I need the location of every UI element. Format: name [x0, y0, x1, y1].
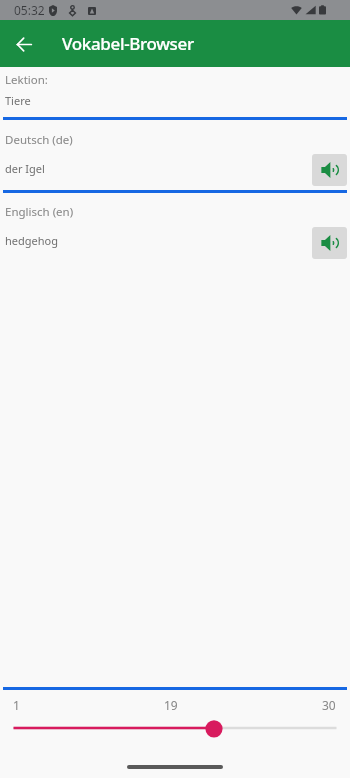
staticText: Lektion:: [5, 72, 48, 88]
staticText: Deutsch (de): [5, 132, 73, 148]
staticText: 05:32: [14, 2, 45, 18]
button[interactable]: Lektion:: [0, 68, 350, 120]
button[interactable]: Deutsch (de): [0, 122, 350, 190]
staticText: der Igel: [5, 161, 45, 176]
button[interactable]: Speak English word: [312, 227, 347, 259]
staticText: 19: [164, 697, 178, 713]
staticText: Englisch (en): [5, 204, 74, 220]
staticText: Vokabel-Browser: [62, 32, 194, 55]
staticText: 1: [13, 697, 20, 713]
staticText: 30: [322, 697, 336, 713]
button[interactable]: Back: [6, 26, 42, 62]
staticText: hedgehog: [5, 233, 58, 248]
button[interactable]: Speak German word: [312, 154, 347, 186]
button[interactable]: Vocabulary index slider, 19 of 30: [0, 717, 350, 741]
staticText: Tiere: [5, 93, 31, 108]
button[interactable]: Englisch (en): [0, 195, 350, 261]
